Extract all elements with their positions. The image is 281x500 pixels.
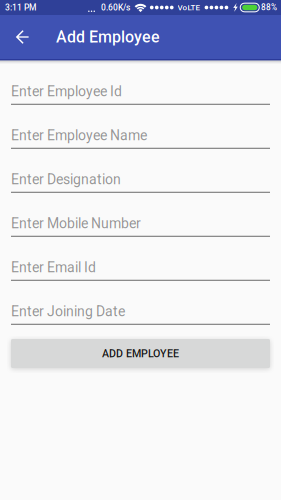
staticText: ADD EMPLOYEE <box>102 347 179 360</box>
staticText: 88% <box>261 3 277 12</box>
staticText: Add Employee <box>56 28 160 46</box>
staticText: Enter Employee Name <box>11 127 147 144</box>
staticText: 3:11 PM <box>5 2 36 12</box>
staticText: Enter Joining Date <box>11 303 125 320</box>
staticText: Enter Designation <box>11 171 121 188</box>
button[interactable]: ADD EMPLOYEE <box>11 339 270 368</box>
button[interactable]: Back <box>0 15 56 59</box>
staticText: Enter Mobile Number <box>11 215 141 232</box>
staticText: Enter Email Id <box>11 259 96 276</box>
staticText: Enter Employee Id <box>11 83 122 100</box>
staticText: 0.60K/s <box>101 2 130 12</box>
staticText: VoLTE <box>178 3 201 12</box>
